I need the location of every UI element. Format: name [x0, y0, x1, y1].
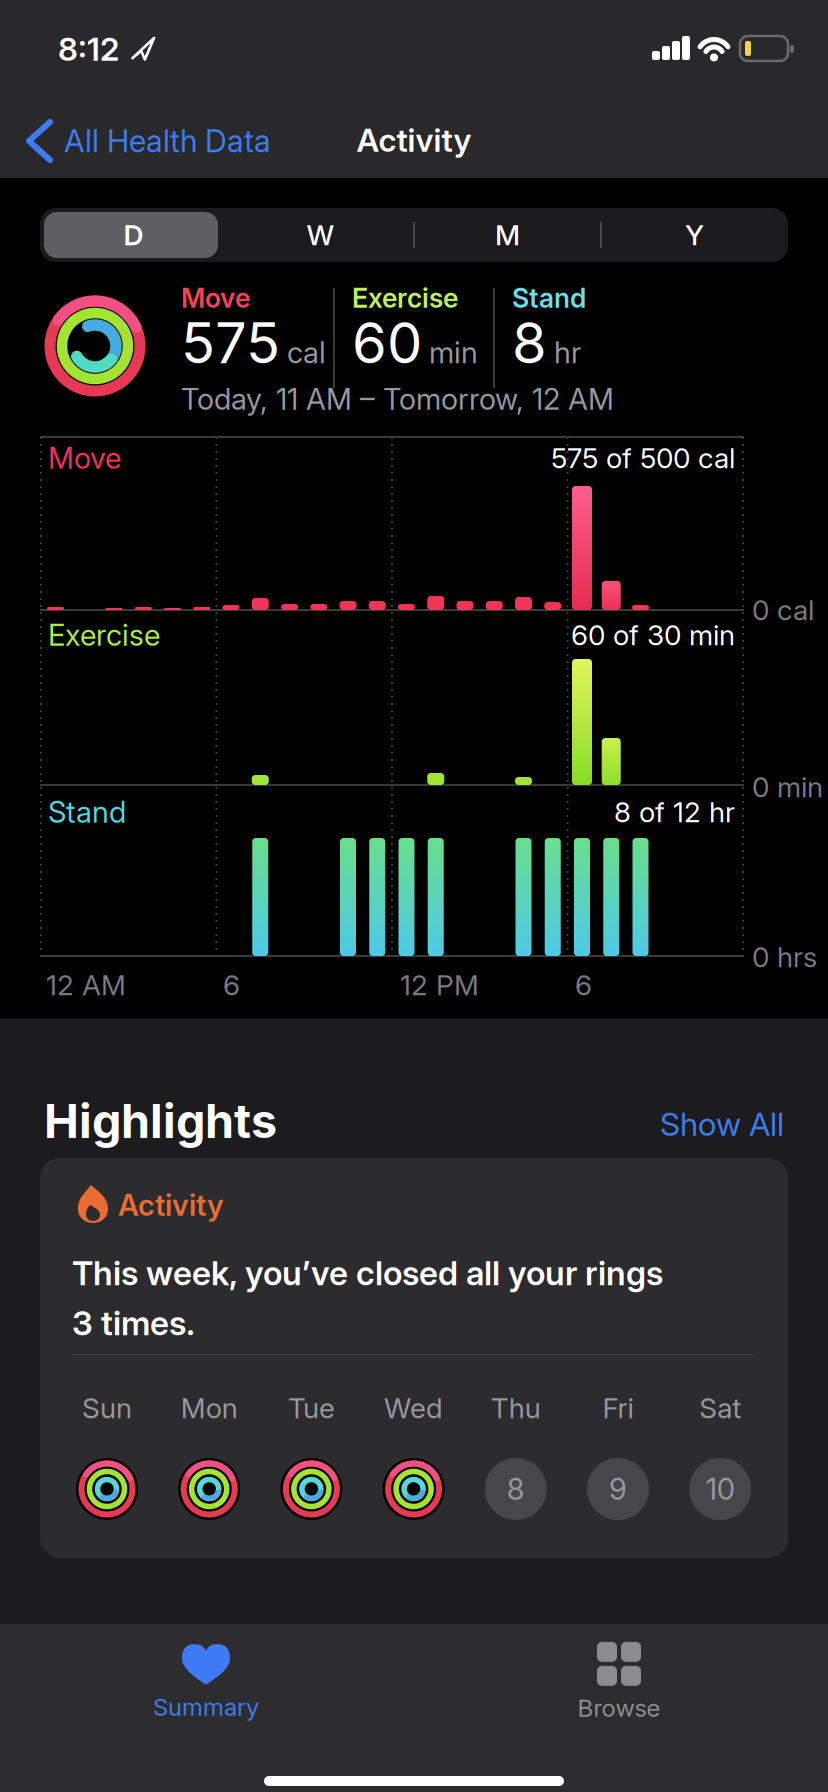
button[interactable]: Browse — [509, 1632, 729, 1732]
staticText: 10 — [706, 1472, 735, 1506]
staticText: Activity — [356, 121, 471, 159]
staticText: Exercise — [352, 282, 458, 314]
staticText: Exercise — [48, 618, 160, 652]
staticText: M — [495, 218, 520, 251]
staticText: Stand — [512, 282, 586, 314]
staticText: Summary — [153, 1693, 259, 1721]
staticText: 8 — [512, 310, 547, 376]
button[interactable]: Y — [601, 208, 788, 262]
staticText: hr — [554, 335, 581, 370]
staticText: 12 AM — [46, 968, 126, 1001]
staticText: Y — [685, 218, 704, 251]
button[interactable]: Summary — [96, 1632, 316, 1732]
staticText: 6 — [223, 968, 240, 1001]
staticText: Sun — [82, 1391, 132, 1424]
button[interactable]: W — [227, 208, 414, 262]
staticText: Sat — [699, 1391, 741, 1424]
staticText: Tue — [288, 1391, 335, 1424]
staticText: Show All — [660, 1105, 784, 1143]
staticText: 6 — [575, 968, 592, 1001]
staticText: 0 cal — [752, 593, 814, 626]
staticText: W — [306, 218, 334, 251]
staticText: This week, you’ve closed all your rings — [72, 1253, 663, 1293]
staticText: 3 times. — [72, 1303, 195, 1343]
staticText: cal — [287, 335, 326, 370]
staticText: 8 of 12 hr — [614, 795, 735, 828]
button[interactable]: D — [40, 208, 227, 262]
staticText: 60 — [352, 310, 422, 376]
staticText: 60 of 30 min — [571, 618, 735, 651]
staticText: Browse — [577, 1694, 660, 1722]
button[interactable]: Back — [26, 113, 366, 169]
staticText: Mon — [181, 1391, 238, 1424]
staticText: Highlights — [44, 1093, 277, 1149]
staticText: 8:12 — [58, 30, 119, 68]
staticText: Thu — [491, 1391, 541, 1424]
staticText: 575 — [181, 310, 280, 376]
staticText: Activity — [118, 1188, 224, 1222]
staticText: Move — [48, 441, 121, 475]
staticText: 0 min — [752, 770, 823, 803]
staticText: 9 — [609, 1472, 627, 1506]
button[interactable]: M — [414, 208, 601, 262]
staticText: Wed — [384, 1391, 443, 1424]
button[interactable]: Show All — [584, 1100, 784, 1148]
staticText: D — [123, 218, 143, 251]
staticText: 0 hrs — [752, 940, 817, 973]
staticText: All Health Data — [64, 123, 271, 159]
staticText: Move — [181, 282, 250, 314]
staticText: 12 PM — [400, 968, 479, 1001]
button[interactable]: Activity — [40, 1158, 788, 1558]
staticText: 8 — [507, 1472, 525, 1506]
staticText: Today, 11 AM – Tomorrow, 12 AM — [181, 382, 614, 416]
staticText: min — [429, 335, 478, 370]
staticText: 575 of 500 cal — [551, 441, 735, 474]
staticText: Fri — [602, 1391, 633, 1424]
staticText: Stand — [48, 795, 126, 829]
